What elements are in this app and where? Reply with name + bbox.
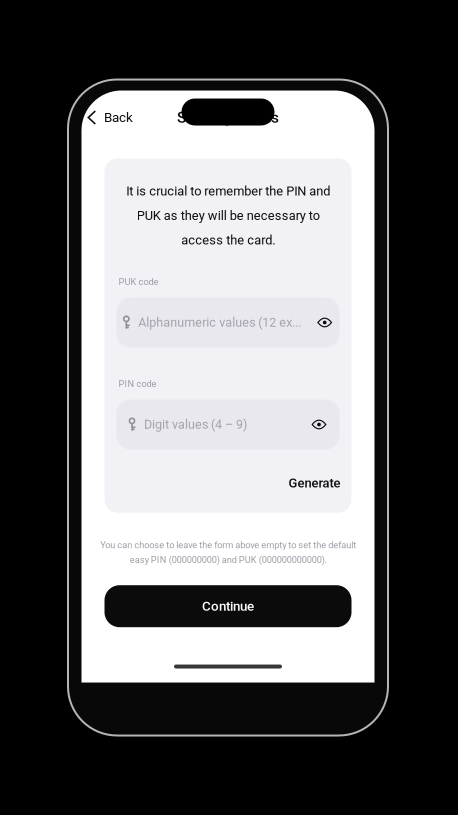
staticText: Generate bbox=[288, 475, 340, 491]
button[interactable]: Alphanumeric values (12 ex... bbox=[116, 297, 339, 347]
staticText: PUK code bbox=[118, 276, 158, 287]
button[interactable]: Continue bbox=[104, 585, 351, 627]
button[interactable]: Digit values (4 – 9) bbox=[116, 399, 339, 449]
staticText: PIN code bbox=[118, 378, 156, 389]
staticText: Digit values (4 – 9) bbox=[144, 417, 247, 432]
button[interactable]: Generate bbox=[288, 466, 340, 500]
staticText: It is crucial to remember the PIN and PU… bbox=[126, 183, 330, 247]
staticText: Back bbox=[104, 110, 133, 125]
staticText: You can choose to leave the form above e… bbox=[100, 540, 356, 565]
staticText: Security codes bbox=[177, 108, 279, 126]
staticText: Continue bbox=[202, 598, 254, 614]
button[interactable]: Back bbox=[81, 104, 141, 131]
staticText: Alphanumeric values (12 ex... bbox=[138, 315, 301, 330]
